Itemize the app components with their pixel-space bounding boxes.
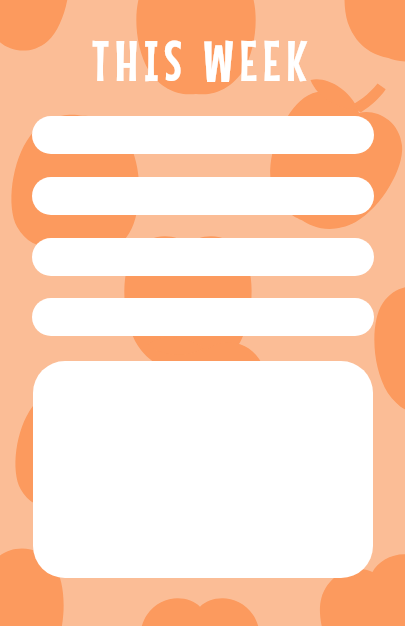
button[interactable]	[32, 116, 374, 154]
staticText: THIS WEEK	[0, 27, 405, 93]
button[interactable]	[32, 298, 374, 336]
button[interactable]	[32, 238, 374, 276]
button[interactable]	[33, 361, 373, 578]
button[interactable]	[32, 177, 374, 215]
